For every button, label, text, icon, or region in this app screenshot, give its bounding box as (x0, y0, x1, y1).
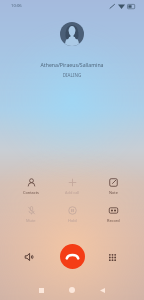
button[interactable]: End call (60, 244, 85, 269)
button[interactable]: Note (93, 177, 134, 196)
staticText: Add call (65, 190, 80, 195)
staticText: Note (109, 190, 118, 195)
staticText: Hold (68, 218, 77, 223)
button[interactable]: Add call (52, 177, 93, 196)
staticText: 10:06 (11, 3, 22, 9)
button[interactable]: Record (93, 205, 134, 224)
staticText: Record (107, 218, 120, 223)
button[interactable]: Speaker (21, 248, 39, 266)
staticText: Mute (26, 218, 36, 223)
button[interactable]: Keypad (103, 248, 121, 266)
button[interactable]: Back (97, 285, 107, 295)
staticText: Athena/Piraeus/Sallamina (0, 61, 144, 68)
button[interactable]: Recents (36, 285, 46, 295)
staticText: Contacts (23, 190, 39, 195)
button[interactable]: Hold (52, 205, 93, 224)
button[interactable]: Mute (10, 205, 52, 224)
staticText: DIALING (0, 72, 144, 78)
button[interactable]: Home (67, 285, 77, 295)
button[interactable]: Contacts (10, 177, 52, 196)
